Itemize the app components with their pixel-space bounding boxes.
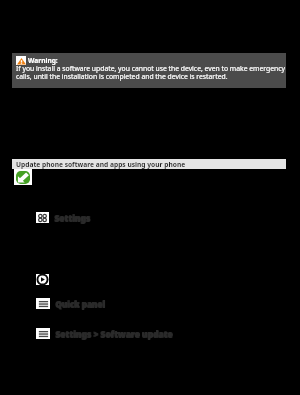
staticText: Settings (55, 212, 91, 223)
staticText: Settings (54, 213, 90, 224)
staticText: Settings > Software update (56, 328, 174, 339)
staticText: Settings > Software update (56, 329, 174, 340)
staticText: Quick panel (55, 298, 105, 309)
staticText: Warning: (28, 56, 58, 65)
staticText: Update phone software and apps using you… (16, 160, 186, 169)
button[interactable]: Warning: (12, 53, 286, 88)
staticText: Settings (54, 212, 90, 223)
staticText: Settings > Software update (55, 329, 173, 340)
button[interactable]: Play video (36, 274, 49, 285)
staticText: Quick panel (56, 299, 106, 310)
button[interactable]: Settings (36, 212, 90, 223)
staticText: Quick panel (55, 299, 105, 310)
button[interactable]: Quick panel (36, 298, 105, 309)
button[interactable]: Software update (14, 169, 32, 185)
staticText: Quick panel (56, 298, 106, 309)
staticText: calls, until the installation is complet… (16, 72, 228, 81)
staticText: Settings (55, 213, 91, 224)
button[interactable]: Update phone software and apps using you… (12, 159, 286, 169)
staticText: If you install a software update, you ca… (16, 64, 285, 73)
button[interactable]: Settings > Software update (36, 328, 173, 339)
staticText: Settings > Software update (55, 328, 173, 339)
